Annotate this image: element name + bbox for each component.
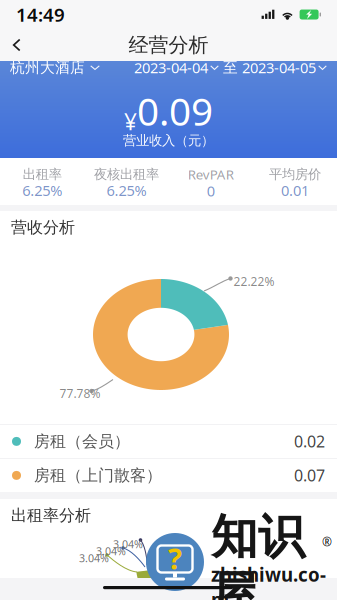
staticText: 出租率分析 <box>11 506 91 525</box>
button[interactable]: 2023-04-05 <box>242 54 327 81</box>
staticText: ¥ <box>124 106 137 136</box>
staticText: ® <box>322 534 332 550</box>
staticText: 2023-04-05 <box>242 58 316 77</box>
staticText: 3.04% <box>96 544 126 558</box>
staticText: ? <box>168 538 182 577</box>
staticText: 0.02 <box>294 431 325 452</box>
staticText: 22.22% <box>233 273 274 289</box>
staticText: 14:49 <box>16 2 65 27</box>
staticText: 77.78% <box>59 385 100 401</box>
staticText: 0.09 <box>137 85 213 136</box>
staticText: 房租（会员） <box>34 432 130 451</box>
staticText: 经营分析 <box>128 33 208 57</box>
staticText: 3.04% <box>79 551 109 565</box>
button[interactable]: 返回 <box>0 29 34 61</box>
button[interactable]: 杭州大酒店 <box>10 55 100 81</box>
staticText: 知识屋 <box>211 508 305 600</box>
staticText: 房租（上门散客） <box>34 466 162 485</box>
staticText: 6.25% <box>106 180 146 200</box>
staticText: 2023-04-04 <box>134 58 208 77</box>
staticText: 3.04% <box>113 537 143 551</box>
staticText: RevPAR <box>188 165 234 183</box>
staticText: zhishiwu.com <box>211 562 326 600</box>
button[interactable]: 房租（会员） <box>0 424 337 458</box>
staticText: 6.25% <box>22 180 62 200</box>
staticText: 0.01 <box>281 180 309 200</box>
staticText: 出租率 <box>23 166 62 182</box>
staticText: 夜核出租率 <box>94 166 159 182</box>
staticText: 0 <box>207 181 215 201</box>
staticText: 0.07 <box>294 465 325 486</box>
staticText: 营收分析 <box>11 218 75 237</box>
button[interactable]: 2023-04-04 <box>134 54 219 81</box>
staticText: 至 <box>223 59 238 77</box>
staticText: 营业收入（元） <box>123 132 214 149</box>
button[interactable]: 房租（上门散客） <box>0 458 337 492</box>
staticText: 平均房价 <box>269 166 321 182</box>
staticText: 杭州大酒店 <box>10 59 85 77</box>
